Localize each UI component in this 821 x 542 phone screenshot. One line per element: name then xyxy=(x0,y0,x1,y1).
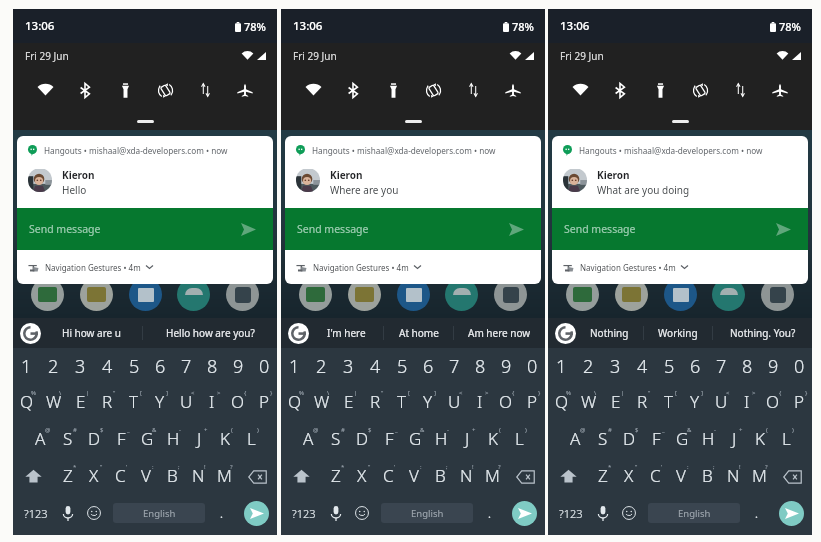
button[interactable]: } xyxy=(519,384,545,421)
button[interactable]: ] xyxy=(415,384,441,421)
button[interactable]: | xyxy=(67,384,94,421)
button[interactable]: # xyxy=(322,421,349,458)
button[interactable]: Working xyxy=(644,318,712,348)
button[interactable]: App icon xyxy=(397,278,430,311)
button[interactable]: 0 xyxy=(786,348,812,384)
button[interactable]: [ xyxy=(121,384,147,421)
button[interactable]: Bluetooth xyxy=(65,69,105,111)
button[interactable]: \ xyxy=(40,384,67,421)
button[interactable]: [ xyxy=(389,384,415,421)
button[interactable]: Wi-Fi xyxy=(25,69,65,111)
button[interactable]: Emoji xyxy=(77,493,110,533)
button[interactable]: } xyxy=(251,384,277,421)
button[interactable]: App icon xyxy=(445,278,478,311)
button[interactable]: Shift xyxy=(13,458,54,495)
button[interactable]: App icon xyxy=(129,278,162,311)
button[interactable]: 4 xyxy=(629,348,656,384)
button[interactable]: Send message xyxy=(512,501,537,526)
button[interactable]: : xyxy=(668,458,694,495)
button[interactable]: # xyxy=(589,421,616,458)
button[interactable]: 8 xyxy=(467,348,493,384)
button[interactable]: App icon xyxy=(664,278,697,311)
button[interactable]: & xyxy=(402,421,428,458)
button[interactable]: Send message xyxy=(17,208,273,250)
button[interactable]: [ xyxy=(656,384,682,421)
button[interactable]: \ xyxy=(575,384,602,421)
button[interactable]: Google Assistant xyxy=(555,323,576,344)
button[interactable]: App icon xyxy=(177,278,210,311)
button[interactable]: % xyxy=(13,384,40,421)
button[interactable]: Send message xyxy=(285,208,541,250)
button[interactable]: $ xyxy=(349,421,376,458)
button[interactable]: ?123 xyxy=(548,493,594,533)
button[interactable]: - xyxy=(160,421,186,458)
button[interactable]: ( xyxy=(480,421,506,458)
button[interactable]: 7 xyxy=(708,348,734,384)
button[interactable]: ; xyxy=(694,458,720,495)
button[interactable]: 6 xyxy=(147,348,173,384)
button[interactable]: Mobile data xyxy=(720,69,760,111)
button[interactable]: 7 xyxy=(173,348,199,384)
button[interactable]: < xyxy=(708,384,734,421)
button[interactable]: + xyxy=(454,421,480,458)
button[interactable]: * xyxy=(589,458,616,495)
button[interactable]: 3 xyxy=(67,348,94,384)
button[interactable]: App icon xyxy=(566,278,599,311)
button[interactable]: ; xyxy=(159,458,185,495)
button[interactable]: App icon xyxy=(348,278,381,311)
button[interactable]: Collapse quick settings xyxy=(405,120,422,123)
button[interactable]: 9 xyxy=(225,348,251,384)
button[interactable]: % xyxy=(281,384,308,421)
button[interactable]: | xyxy=(602,384,629,421)
button[interactable]: 6 xyxy=(682,348,708,384)
button[interactable]: Voice input xyxy=(594,493,612,533)
button[interactable]: > xyxy=(467,384,493,421)
button[interactable]: 1 xyxy=(281,348,308,384)
button[interactable]: - xyxy=(428,421,454,458)
button[interactable]: 6 xyxy=(415,348,441,384)
button[interactable]: \ xyxy=(308,384,335,421)
button[interactable]: Airplane mode xyxy=(225,69,265,111)
button[interactable]: App icon xyxy=(80,278,113,311)
button[interactable]: 5 xyxy=(656,348,682,384)
button[interactable]: At home xyxy=(384,318,453,348)
button[interactable]: App icon xyxy=(761,278,794,311)
button[interactable]: 1 xyxy=(13,348,40,384)
button[interactable]: + xyxy=(186,421,212,458)
button[interactable]: Bluetooth xyxy=(333,69,373,111)
button[interactable]: { xyxy=(493,384,519,421)
button[interactable]: 4 xyxy=(362,348,389,384)
button[interactable]: ) xyxy=(773,421,799,458)
button[interactable]: 8 xyxy=(734,348,760,384)
button[interactable]: $ xyxy=(81,421,108,458)
button[interactable]: % xyxy=(548,384,575,421)
button[interactable]: Collapse quick settings xyxy=(137,120,154,123)
button[interactable]: . xyxy=(743,493,770,533)
button[interactable]: Am here now xyxy=(454,318,545,348)
button[interactable]: ? xyxy=(746,458,772,495)
button[interactable]: App icon xyxy=(615,278,648,311)
button[interactable]: Flashlight xyxy=(105,69,145,111)
button[interactable]: @ xyxy=(295,421,322,458)
button[interactable]: > xyxy=(199,384,225,421)
button[interactable]: " xyxy=(362,384,389,421)
button[interactable]: Flashlight xyxy=(640,69,680,111)
button[interactable]: _ xyxy=(108,421,134,458)
button[interactable]: 3 xyxy=(335,348,362,384)
button[interactable]: 5 xyxy=(121,348,147,384)
button[interactable]: < xyxy=(173,384,199,421)
button[interactable]: { xyxy=(760,384,786,421)
button[interactable]: 0 xyxy=(251,348,277,384)
button[interactable]: Airplane mode xyxy=(493,69,533,111)
button[interactable]: ! xyxy=(453,458,479,495)
button[interactable]: Google Assistant xyxy=(20,323,41,344)
button[interactable]: App icon xyxy=(712,278,745,311)
button[interactable]: App icon xyxy=(226,278,259,311)
button[interactable]: 7 xyxy=(441,348,467,384)
button[interactable]: Voice input xyxy=(59,493,77,533)
button[interactable]: Send message xyxy=(779,501,804,526)
button[interactable]: ?123 xyxy=(13,493,59,533)
button[interactable]: _ xyxy=(643,421,669,458)
button[interactable]: App icon xyxy=(494,278,527,311)
button[interactable]: App icon xyxy=(31,278,64,311)
